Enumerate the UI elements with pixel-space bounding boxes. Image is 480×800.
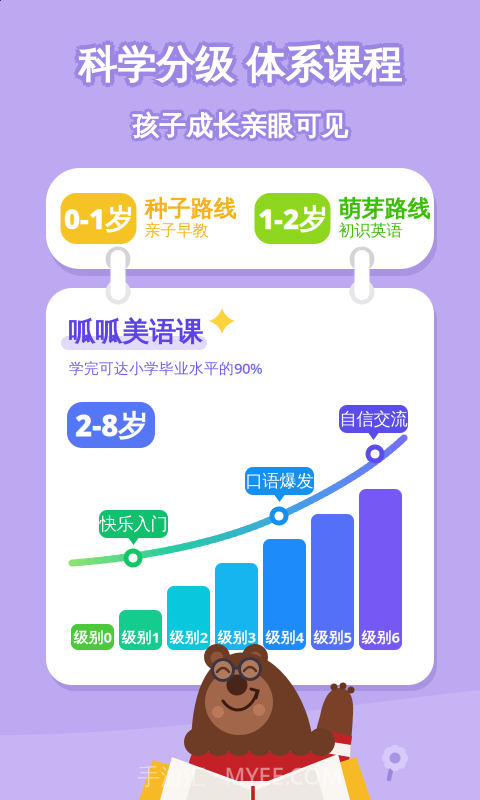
staticText: 孩子成长亲眼可见 [130, 107, 346, 140]
staticText: 孩子成长亲眼可见 [135, 110, 351, 142]
staticText: 科学分级 体系课程 [73, 41, 397, 89]
button[interactable]: 2-8岁 [67, 402, 155, 448]
staticText: 学完可达小学毕业水平的90% [69, 358, 262, 378]
staticText: 科学分级 体系课程 [75, 44, 399, 92]
staticText: 1-2岁 [258, 200, 327, 237]
button[interactable]: 呱呱美语课 [68, 315, 208, 349]
staticText: 科学分级 体系课程 [81, 44, 405, 92]
staticText: 级别5 [313, 627, 351, 647]
staticText: 科学分级 体系课程 [75, 38, 399, 86]
staticText: 快乐入门 [99, 513, 167, 535]
staticText: 孩子成长亲眼可见 [132, 106, 348, 139]
staticText: 口语爆发 [245, 470, 313, 492]
staticText: 萌芽路线 [338, 195, 430, 223]
staticText: 2-8岁 [75, 405, 147, 444]
staticText: 级别3 [217, 627, 255, 647]
staticText: 科学分级 体系课程 [78, 41, 402, 89]
staticText: 级别1 [121, 627, 159, 647]
staticText: 级别6 [361, 627, 399, 647]
staticText: 级别2 [169, 627, 207, 647]
staticText: 孩子成长亲眼可见 [132, 113, 348, 146]
staticText: 亲子早教 [144, 221, 208, 240]
staticText: 种子路线 [144, 195, 236, 223]
staticText: 孩子成长亲眼可见 [129, 110, 345, 142]
staticText: 孩子成长亲眼可见 [132, 110, 348, 142]
staticText: 孩子成长亲眼可见 [134, 112, 350, 145]
staticText: 手游汇 · MYEE.COM [137, 761, 342, 791]
button[interactable]: 0-1岁 [46, 168, 240, 269]
staticText: 0-1岁 [64, 200, 133, 237]
staticText: 级别4 [265, 627, 303, 647]
staticText: 孩子成长亲眼可见 [134, 107, 350, 140]
staticText: 初识英语 [338, 221, 402, 240]
staticText: 孩子成长亲眼可见 [130, 112, 346, 145]
staticText: 科学分级 体系课程 [81, 38, 405, 86]
staticText: 科学分级 体系课程 [78, 46, 402, 93]
button[interactable]: 1-2岁 [240, 168, 434, 269]
staticText: 科学分级 体系课程 [78, 37, 402, 84]
staticText: 呱呱美语课 [68, 316, 203, 348]
staticText: 级别0 [73, 627, 111, 647]
staticText: 科学分级 体系课程 [82, 41, 406, 89]
staticText: 自信交流 [339, 408, 407, 430]
